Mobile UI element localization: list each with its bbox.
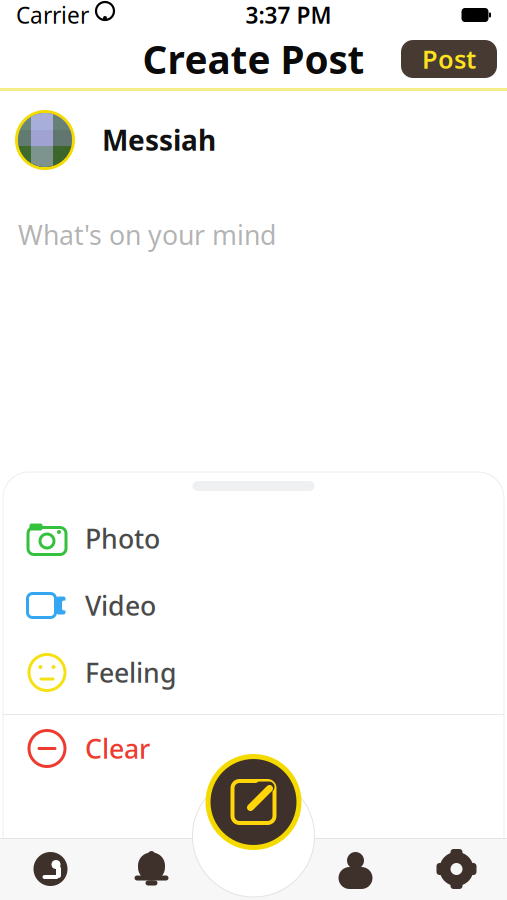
button[interactable]: Explore	[0, 838, 101, 900]
staticText: Clear	[85, 731, 150, 766]
staticText: What's on your mind	[18, 217, 276, 252]
button[interactable]: Settings	[406, 838, 507, 900]
button[interactable]: Compose	[203, 752, 303, 852]
staticText	[89, 0, 95, 30]
button[interactable]: Feeling	[3, 639, 504, 706]
button[interactable]: Profile	[305, 838, 406, 900]
staticText: Photo	[85, 521, 160, 556]
button[interactable]: Photo	[3, 505, 504, 572]
staticText: Video	[85, 588, 156, 623]
staticText: Messiah	[102, 121, 216, 159]
staticText: Post	[422, 42, 476, 76]
staticText: Carrier	[16, 0, 89, 30]
button[interactable]: Video	[3, 572, 504, 639]
button[interactable]: Clear	[3, 715, 504, 782]
staticText: Create Post	[142, 33, 364, 85]
staticText: 3:37 PM	[245, 0, 331, 30]
staticText: Feeling	[85, 655, 177, 690]
button[interactable]: Post	[401, 40, 497, 78]
button[interactable]: Notifications	[101, 838, 202, 900]
